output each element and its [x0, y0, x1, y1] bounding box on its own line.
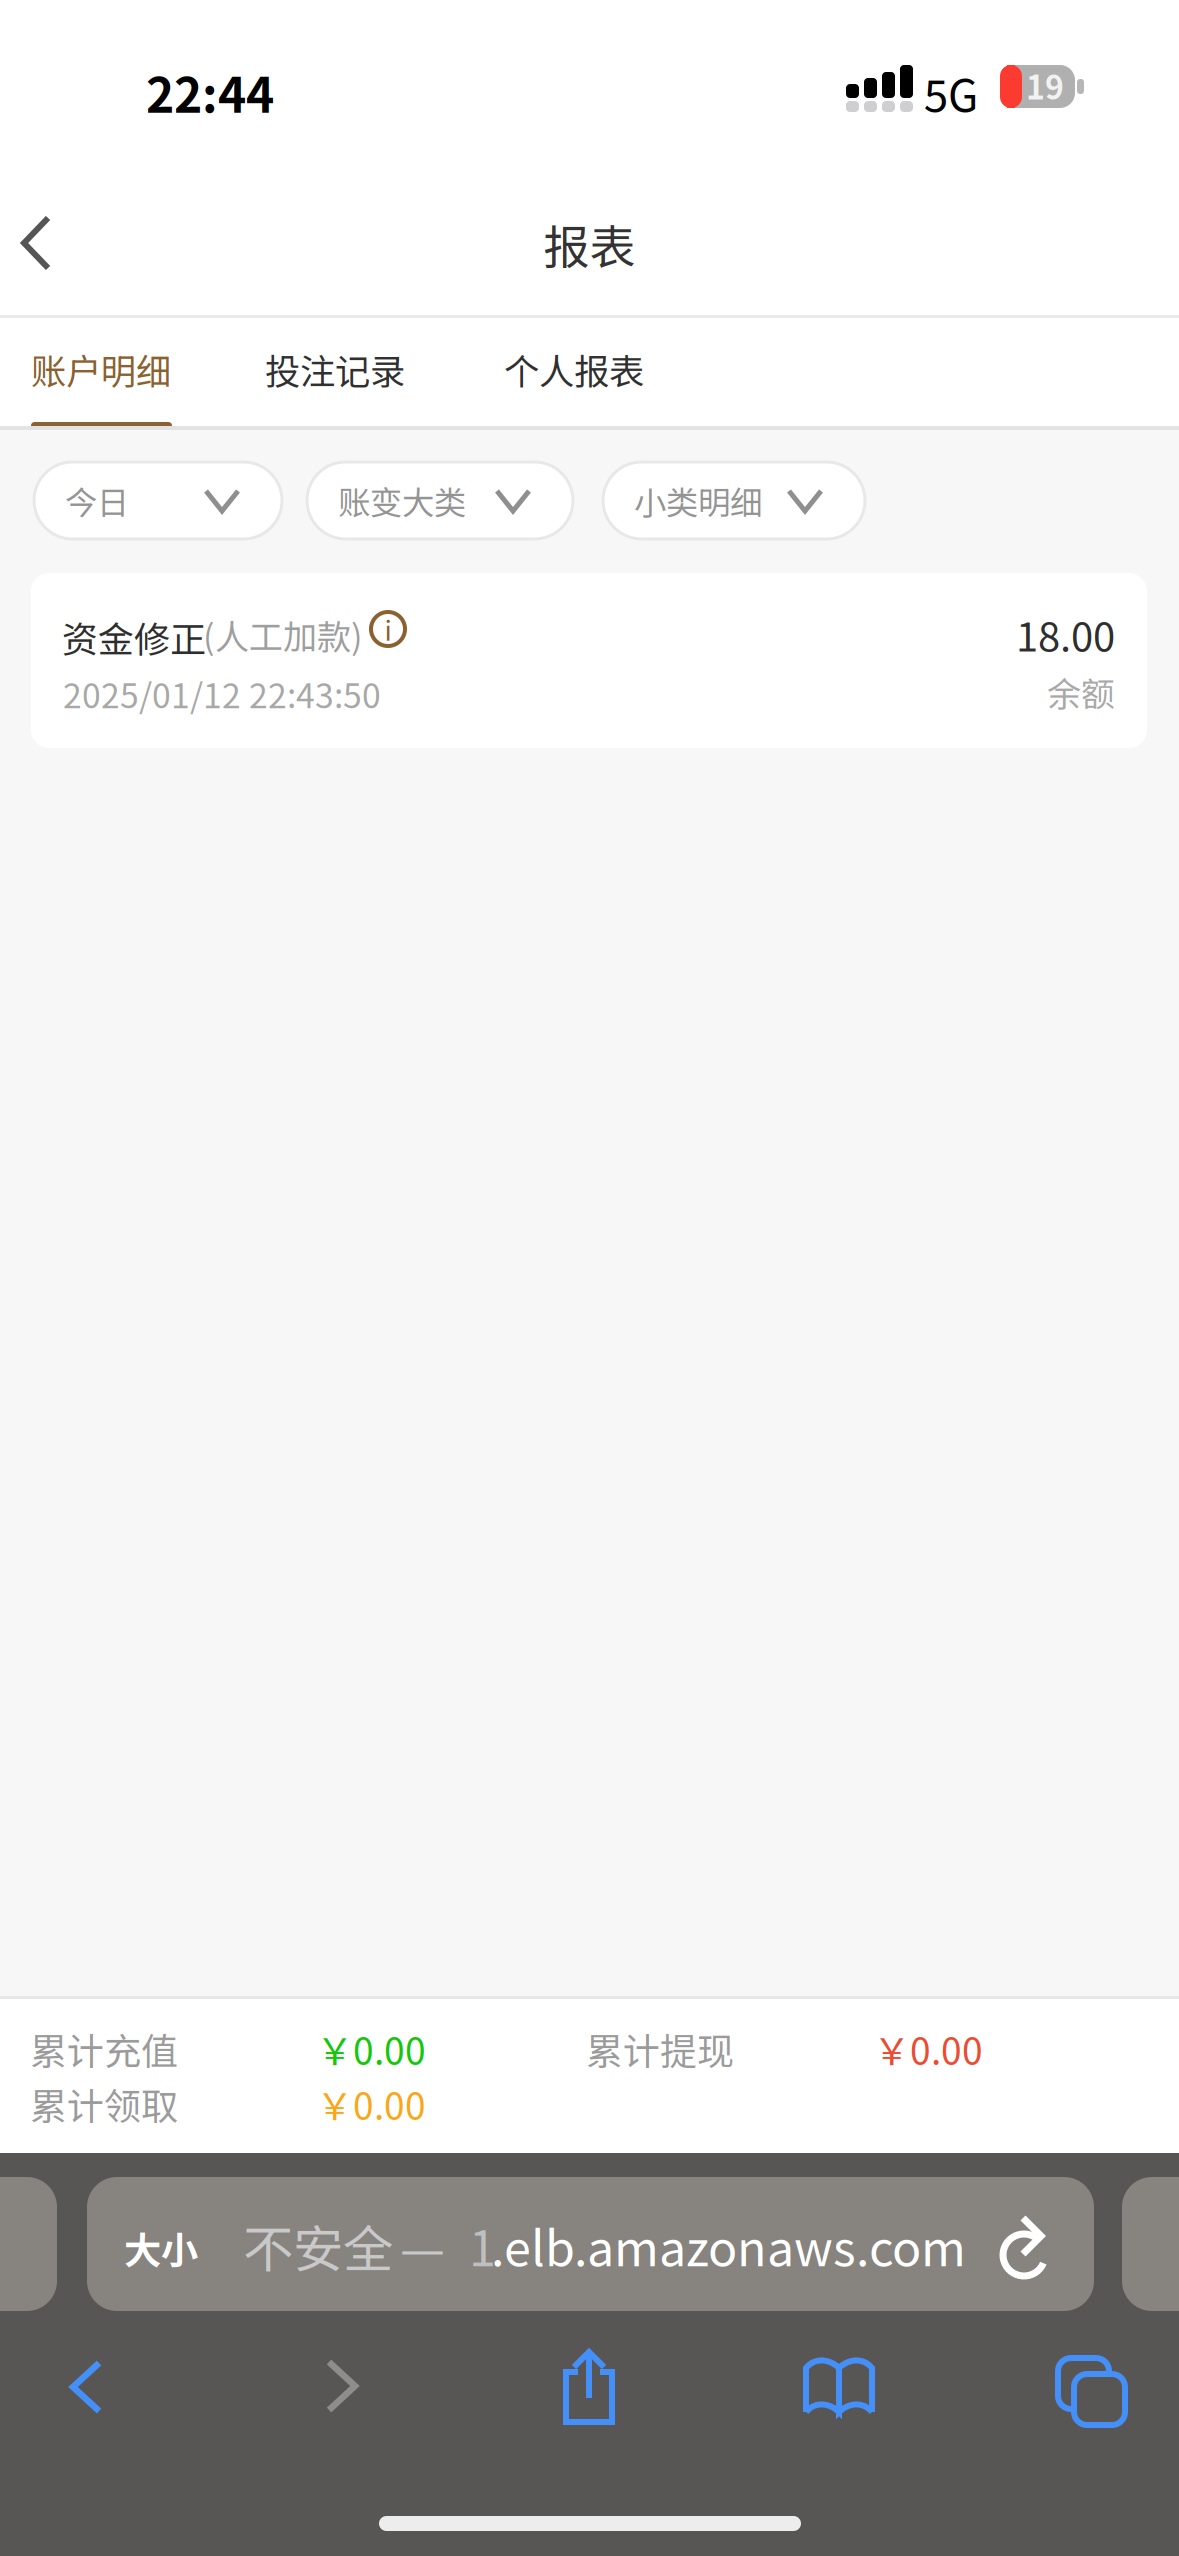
staticText: 19: [1026, 62, 1064, 109]
staticText: 个人报表: [504, 343, 644, 395]
staticText: 1: [469, 2210, 496, 2280]
staticText: 5G: [924, 61, 978, 125]
button[interactable]: Bookmarks: [802, 2357, 876, 2417]
button[interactable]: 今日: [34, 462, 282, 539]
staticText: 报表: [543, 211, 635, 277]
button[interactable]: Share: [556, 2350, 622, 2432]
staticText: 投注记录: [265, 343, 405, 395]
button[interactable]: 账变大类: [307, 462, 573, 539]
staticText: 累计提现: [586, 2022, 734, 2076]
staticText: (人工加款): [203, 610, 363, 659]
staticText: 小类明细: [634, 477, 762, 524]
button[interactable]: 小类明细: [603, 462, 865, 539]
button[interactable]: Forward: [324, 2358, 364, 2418]
staticText: —: [400, 2209, 445, 2282]
button[interactable]: Back: [68, 2359, 108, 2419]
staticText: 账户明细: [31, 343, 171, 395]
staticText: ￥0.00: [316, 2077, 426, 2131]
staticText: 今日: [65, 477, 129, 524]
button[interactable]: 投注记录: [265, 318, 406, 428]
staticText: 18.00: [1016, 605, 1115, 663]
staticText: i: [384, 610, 391, 648]
button[interactable]: Back: [0, 186, 108, 294]
staticText: 账变大类: [338, 477, 466, 524]
staticText: ￥0.00: [316, 2022, 426, 2076]
staticText: 大小: [124, 2221, 198, 2275]
staticText: .elb.amazonaws.com: [491, 2210, 966, 2280]
staticText: 22:44: [146, 57, 274, 126]
staticText: 累计充值: [30, 2022, 178, 2076]
button[interactable]: 大小: [87, 2177, 1094, 2311]
staticText: ￥0.00: [873, 2022, 983, 2076]
button[interactable]: 账户明细: [31, 318, 172, 428]
button[interactable]: Tabs: [1058, 2358, 1126, 2426]
button[interactable]: 个人报表: [504, 318, 645, 428]
staticText: 余额: [1047, 667, 1115, 717]
staticText: 2025/01/12 22:43:50: [63, 669, 381, 718]
staticText: 累计领取: [30, 2077, 178, 2131]
staticText: 不安全: [243, 2209, 393, 2282]
staticText: 资金修正: [62, 611, 206, 663]
